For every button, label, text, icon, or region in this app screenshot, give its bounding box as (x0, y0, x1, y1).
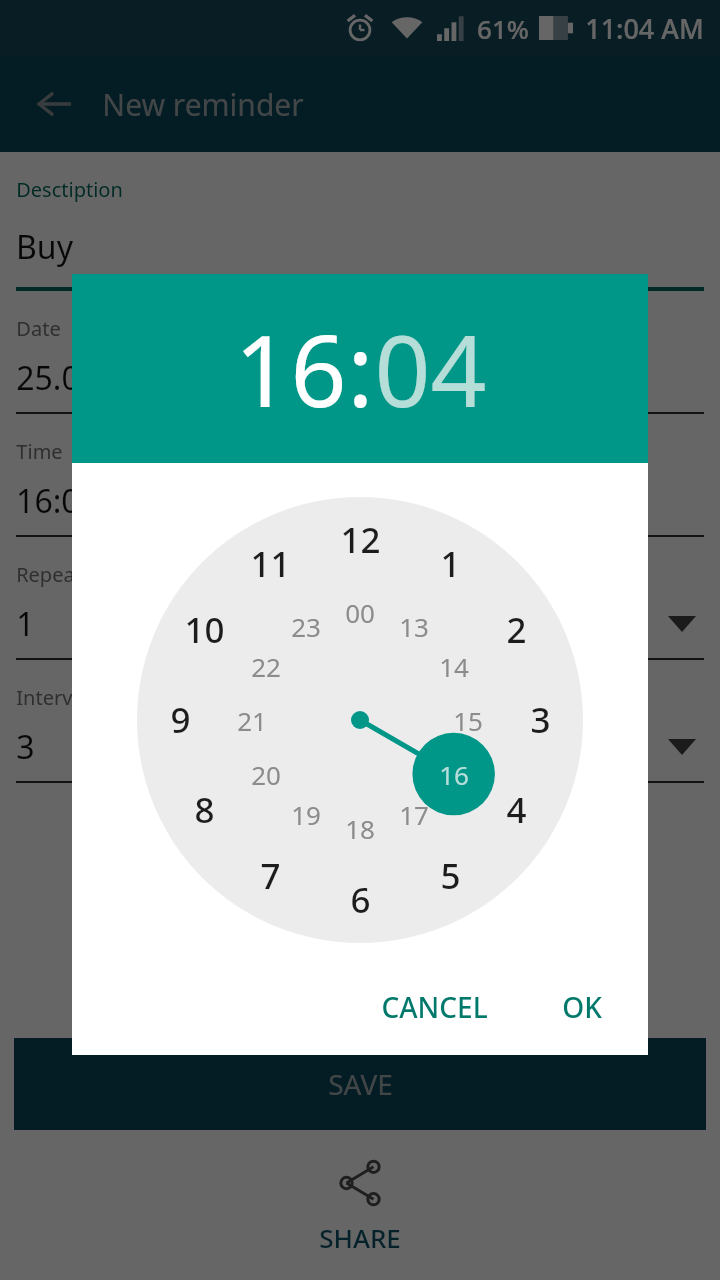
staticText: 61% (477, 11, 529, 46)
staticText: 14 (439, 649, 469, 684)
staticText: 2 (506, 606, 527, 654)
staticText: SHARE (319, 1220, 401, 1255)
staticText: 1 (440, 540, 461, 588)
staticText: 1 (16, 602, 35, 646)
staticText: 16:04 (16, 479, 98, 523)
staticText: Interval (16, 684, 89, 711)
staticText: 3 (16, 725, 35, 769)
staticText: 16 (439, 757, 469, 792)
staticText: 9 (170, 696, 191, 744)
staticText: 23 (291, 609, 321, 644)
staticText: 12 (340, 516, 381, 564)
button[interactable]: Back (24, 74, 84, 134)
staticText: 11 (250, 540, 291, 588)
staticText: 25.06.2018 (16, 356, 180, 400)
staticText: 7 (260, 852, 281, 900)
staticText: : (347, 302, 374, 435)
staticText: New reminder (102, 84, 304, 125)
button[interactable]: SHARE (313, 1150, 407, 1261)
staticText: OK (562, 988, 602, 1026)
staticText: 22 (251, 649, 281, 684)
staticText: CANCEL (381, 988, 488, 1026)
staticText: Time (16, 438, 63, 465)
staticText: 00 (345, 595, 375, 630)
staticText: 15 (453, 703, 483, 738)
staticText: 10 (184, 606, 225, 654)
staticText: Date (16, 315, 61, 342)
button[interactable]: OK (542, 974, 622, 1040)
staticText: 11:04 AM (585, 10, 704, 47)
staticText: Repeat (16, 561, 82, 588)
staticText: 13 (399, 609, 429, 644)
staticText: 8 (194, 786, 215, 834)
staticText: Buy (16, 225, 73, 269)
staticText: 16 (234, 302, 347, 435)
staticText: 3 (530, 696, 551, 744)
staticText: 17 (399, 797, 429, 832)
staticText: 4 (506, 786, 527, 834)
staticText: SAVE (328, 1065, 393, 1103)
staticText: Desctiption (16, 176, 123, 203)
staticText: 5 (440, 852, 461, 900)
staticText: 19 (291, 797, 321, 832)
staticText: 20 (251, 757, 281, 792)
staticText: 21 (237, 703, 267, 738)
staticText: 04 (374, 302, 487, 435)
button[interactable]: SAVE (14, 1038, 706, 1130)
staticText: 6 (350, 876, 371, 924)
button[interactable]: CANCEL (361, 974, 508, 1040)
staticText: 18 (345, 811, 375, 846)
